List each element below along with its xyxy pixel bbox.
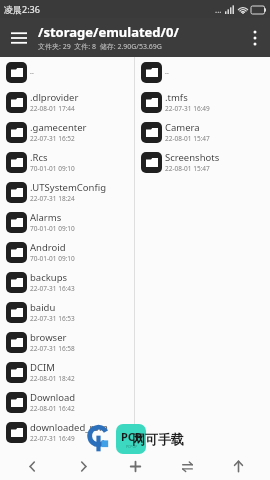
staticText: 22-07-31 16:52 <box>30 134 75 143</box>
staticText: 70-01-01 09:10 <box>30 254 75 263</box>
staticText: 22-08-01 15:47 <box>165 134 210 143</box>
button[interactable]: .gamecenter <box>0 117 134 147</box>
button[interactable]: .Rcs <box>0 147 134 177</box>
staticText: PCPOP <box>126 444 138 449</box>
button[interactable]: .UTSystemConfig <box>0 177 134 207</box>
button[interactable]: Camera <box>135 117 270 147</box>
staticText: /storage/emulated/0/ <box>38 23 179 41</box>
button[interactable]: DCIM <box>0 357 134 387</box>
staticText: 70-01-01 09:10 <box>30 224 75 233</box>
staticText: .. <box>165 67 169 77</box>
button[interactable]: Transfer <box>167 452 207 480</box>
staticText: 22-08-01 16:42 <box>30 404 75 413</box>
button[interactable]: downloaded_rom <box>0 417 134 447</box>
staticText: 网可手载 <box>132 431 184 447</box>
staticText: Camera <box>165 121 200 134</box>
staticText: 22-07-31 16:49 <box>165 104 210 113</box>
button[interactable]: Add <box>115 452 155 480</box>
button[interactable]: .tmfs <box>135 87 270 117</box>
staticText: 22-08-01 18:42 <box>30 374 75 383</box>
staticText: PCP <box>121 429 142 444</box>
button[interactable]: backups <box>0 267 134 297</box>
staticText: 文件夹: 29 文件: 8 储存: 2.90G/53.69G <box>38 42 162 52</box>
staticText: 22-07-31 16:49 <box>30 434 75 443</box>
staticText: .UTSystemConfig <box>30 181 107 194</box>
button[interactable]: Alarms <box>0 207 134 237</box>
staticText: ... <box>215 4 222 15</box>
staticText: downloaded_rom <box>30 421 108 434</box>
staticText: baidu <box>30 301 56 314</box>
staticText: 70-01-01 09:10 <box>30 164 75 173</box>
staticText: 22-08-01 17:44 <box>30 104 75 113</box>
staticText: DCIM <box>30 361 55 374</box>
staticText: .tmfs <box>165 91 188 104</box>
button[interactable]: .. <box>135 57 270 87</box>
staticText: .dlprovider <box>30 91 79 104</box>
staticText: backups <box>30 271 68 284</box>
staticText: Screenshots <box>165 151 220 164</box>
staticText: .. <box>30 67 34 77</box>
staticText: 22-07-31 16:53 <box>30 314 75 323</box>
button[interactable]: .dlprovider <box>0 87 134 117</box>
button[interactable]: Up <box>218 452 258 480</box>
staticText: browser <box>30 331 67 344</box>
button[interactable]: Back <box>12 452 52 480</box>
staticText: Download <box>30 391 76 404</box>
button[interactable]: Forward <box>63 452 103 480</box>
staticText: Alarms <box>30 211 62 224</box>
button[interactable]: .. <box>0 57 134 87</box>
staticText: .gamecenter <box>30 121 87 134</box>
button[interactable]: browser <box>0 327 134 357</box>
staticText: 22-07-31 16:58 <box>30 344 75 353</box>
staticText: 22-08-01 15:47 <box>165 164 210 173</box>
staticText: .Rcs <box>30 151 48 164</box>
button[interactable]: baidu <box>0 297 134 327</box>
button[interactable]: More options <box>240 18 270 57</box>
staticText: 22-07-31 16:43 <box>30 284 75 293</box>
button[interactable]: Download <box>0 387 134 417</box>
button[interactable]: Screenshots <box>135 147 270 177</box>
staticText: 凌晨2:36 <box>4 3 40 15</box>
button[interactable]: Menu <box>0 18 38 57</box>
staticText: 22-07-31 18:24 <box>30 194 75 203</box>
staticText: Android <box>30 241 66 254</box>
button[interactable]: Android <box>0 237 134 267</box>
